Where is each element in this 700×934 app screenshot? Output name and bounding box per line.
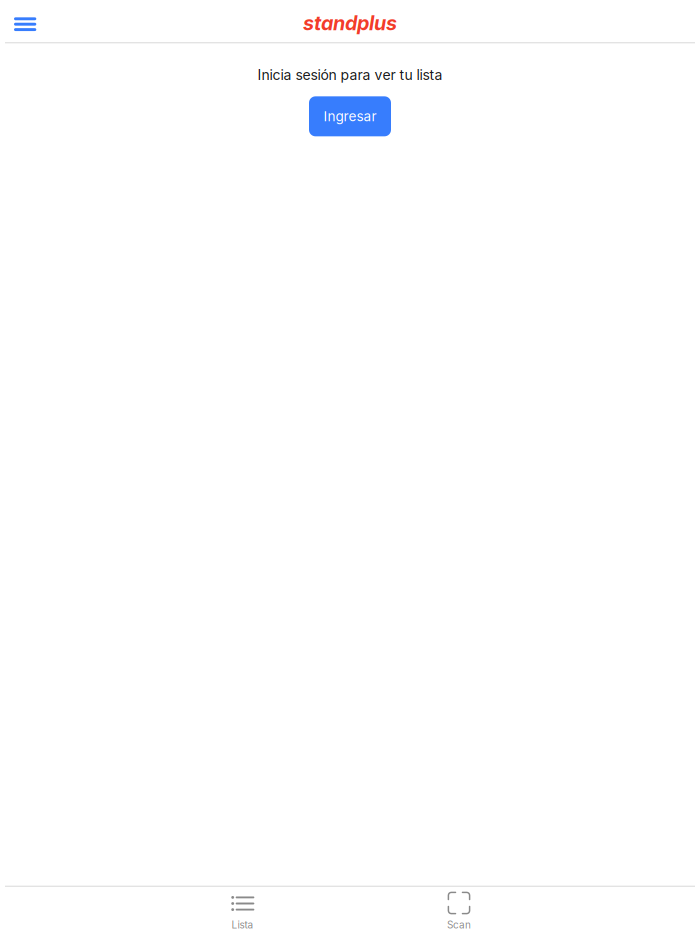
staticText: Scan [447,919,471,931]
button[interactable]: Lista [182,884,302,934]
button[interactable]: Menu [0,0,48,42]
staticText: Ingresar [323,108,376,125]
staticText: Inicia sesión para ver tu lista [257,66,442,83]
button[interactable]: Scan [399,884,519,934]
button[interactable]: Ingresar [309,96,391,136]
staticText: standplus [303,11,397,35]
staticText: Lista [231,919,253,931]
